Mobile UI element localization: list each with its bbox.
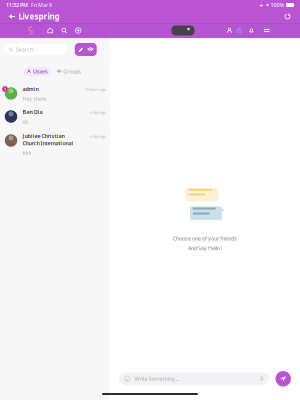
button[interactable]: Ben Ola: [0, 105, 113, 129]
button[interactable]: Profile: [226, 27, 232, 33]
staticText: Livespring: [18, 11, 59, 22]
staticText: 100%: [270, 1, 284, 9]
button[interactable]: Refresh: [278, 10, 297, 23]
staticText: Choose one of your friends: [173, 235, 237, 242]
button[interactable]: Home: [47, 27, 53, 34]
button[interactable]: Jubilee Christian Church International: [0, 129, 113, 156]
button[interactable]: Send: [275, 371, 291, 386]
staticText: a day ago: [89, 109, 105, 115]
button[interactable]: New chat: [75, 43, 97, 56]
staticText: And Say Hello !: [188, 245, 222, 252]
button[interactable]: Notifications: [248, 27, 254, 33]
staticText: kkk: [22, 149, 31, 156]
staticText: Users: [33, 68, 48, 75]
staticText: admin: [22, 85, 38, 93]
staticText: ds: [22, 118, 28, 125]
button[interactable]: Users: [24, 67, 51, 76]
staticText: Fri Mar 8: [31, 1, 52, 9]
staticText: Groups: [63, 68, 81, 75]
button[interactable]: Messages: [236, 27, 243, 34]
staticText: 11:32 PM: [6, 1, 28, 9]
staticText: Hey there: [22, 95, 46, 102]
staticText: a day ago: [89, 133, 105, 139]
button[interactable]: Menu: [263, 27, 270, 34]
staticText: Search: [16, 46, 33, 53]
button[interactable]: Search: [61, 27, 67, 34]
staticText: 1: [4, 86, 6, 92]
staticText: 9 hours ago: [85, 86, 105, 92]
button[interactable]: 1: [0, 82, 113, 105]
staticText: Ben Ola: [22, 108, 42, 116]
button[interactable]: Create: [75, 27, 81, 34]
staticText: Jubilee Christian Church International: [22, 132, 73, 147]
staticText: Write Something ...: [134, 375, 178, 382]
button[interactable]: Livespring: [3, 10, 65, 23]
button[interactable]: Groups: [57, 67, 81, 76]
button[interactable]: Home logo: [26, 26, 35, 35]
